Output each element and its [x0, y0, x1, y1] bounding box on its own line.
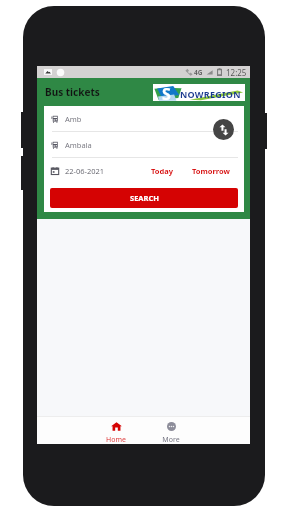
button[interactable]: Today	[149, 166, 176, 176]
staticText: Amb	[65, 114, 82, 124]
button[interactable]: Swap source and destination	[213, 119, 234, 140]
staticText: Ambala	[65, 140, 92, 150]
staticText: Today	[151, 166, 174, 176]
staticText: Tomorrow	[192, 166, 231, 176]
button[interactable]: Ambala	[51, 132, 238, 157]
button[interactable]: SEARCH	[50, 188, 238, 208]
staticText: Bus tickets	[45, 85, 100, 99]
button[interactable]: Tomorrow	[190, 166, 233, 176]
staticText: Home	[106, 435, 126, 444]
staticText: 12:25	[226, 67, 247, 78]
button[interactable]: More	[151, 422, 191, 444]
staticText: 22-06-2021	[65, 166, 105, 176]
staticText: NOWREGION	[180, 88, 241, 100]
staticText: More	[162, 435, 180, 444]
staticText: SEARCH	[130, 193, 159, 203]
button[interactable]: Amb	[51, 106, 238, 131]
button[interactable]: Home	[96, 422, 136, 444]
staticText: 4G	[194, 68, 203, 77]
staticText: S	[162, 83, 171, 100]
